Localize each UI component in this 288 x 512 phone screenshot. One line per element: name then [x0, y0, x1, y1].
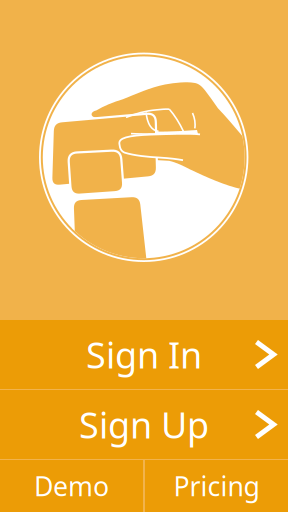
button[interactable]: Sign Up — [0, 390, 288, 459]
staticText: Sign Up — [79, 401, 209, 448]
button[interactable]: Pricing — [145, 460, 288, 512]
staticText: Pricing — [173, 468, 259, 504]
staticText: Sign In — [86, 331, 202, 378]
staticText: Demo — [34, 468, 109, 504]
button[interactable]: Sign In — [0, 320, 288, 389]
button[interactable]: Demo — [0, 460, 143, 512]
